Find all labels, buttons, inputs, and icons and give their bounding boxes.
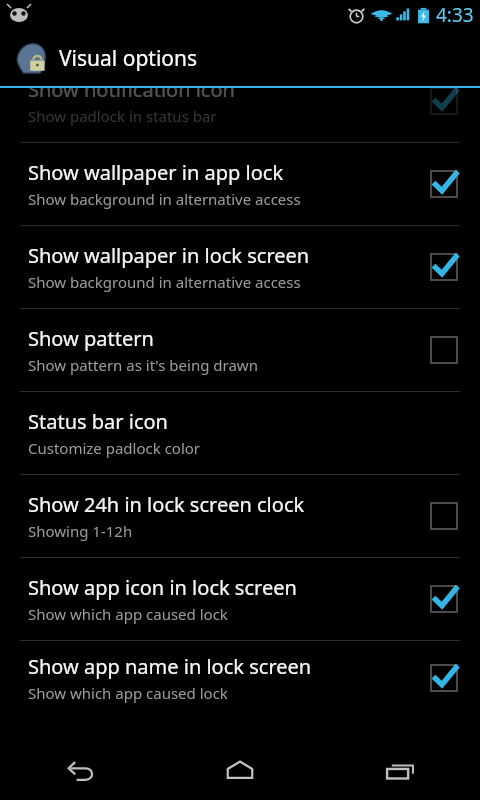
staticText: Customize padlock color bbox=[28, 438, 201, 458]
staticText: Status bar icon bbox=[28, 408, 168, 435]
button[interactable]: Home bbox=[160, 742, 320, 800]
staticText: Show wallpaper in app lock bbox=[28, 159, 284, 186]
staticText: Show app name in lock screen bbox=[28, 653, 312, 680]
button[interactable]: Show 24h in lock screen clock bbox=[0, 475, 480, 557]
staticText: Show notification icon bbox=[28, 88, 235, 103]
staticText: Show pattern bbox=[28, 325, 154, 352]
button[interactable]: Show wallpaper in app lock bbox=[424, 156, 464, 212]
button[interactable]: Show 24h in lock screen clock bbox=[424, 488, 464, 544]
staticText: Showing 1-12h bbox=[28, 521, 133, 541]
button[interactable]: Show notification icon bbox=[424, 88, 464, 129]
staticText: Visual options bbox=[59, 44, 198, 73]
staticText: Show 24h in lock screen clock bbox=[28, 491, 305, 518]
staticText: Show which app caused lock bbox=[28, 683, 228, 703]
button[interactable]: Show wallpaper in app lock bbox=[0, 143, 480, 225]
staticText: Show app icon in lock screen bbox=[28, 574, 297, 601]
staticText: Show background in alternative access bbox=[28, 272, 301, 292]
staticText: 4:33 bbox=[436, 2, 474, 28]
staticText: Show background in alternative access bbox=[28, 189, 301, 209]
button[interactable]: Show wallpaper in lock screen bbox=[0, 226, 480, 308]
button[interactable]: Show app icon in lock screen bbox=[0, 558, 480, 640]
staticText: Show which app caused lock bbox=[28, 604, 228, 624]
button[interactable]: Show notification icon bbox=[0, 88, 480, 142]
button[interactable]: Show pattern bbox=[424, 322, 464, 378]
button[interactable]: Status bar icon bbox=[0, 392, 480, 474]
button[interactable]: Show app name in lock screen bbox=[0, 641, 480, 714]
button[interactable]: Show app icon in lock screen bbox=[424, 571, 464, 627]
staticText: Show pattern as it's being drawn bbox=[28, 355, 258, 375]
button[interactable]: Recent apps bbox=[320, 742, 480, 800]
button[interactable]: Back bbox=[0, 742, 160, 800]
staticText: Show wallpaper in lock screen bbox=[28, 242, 310, 269]
button[interactable]: Show pattern bbox=[0, 309, 480, 391]
staticText: Show padlock in status bar bbox=[28, 106, 217, 126]
button[interactable]: Show wallpaper in lock screen bbox=[424, 239, 464, 295]
button[interactable]: Show app name in lock screen bbox=[424, 650, 464, 706]
